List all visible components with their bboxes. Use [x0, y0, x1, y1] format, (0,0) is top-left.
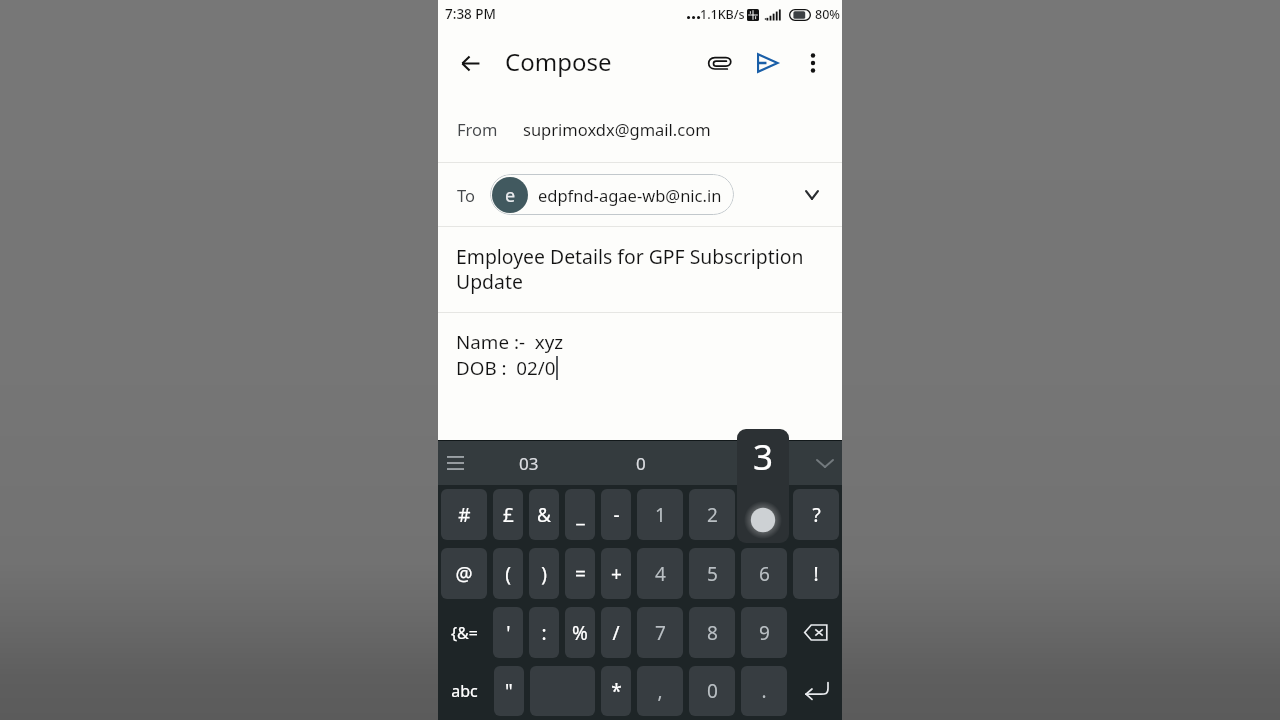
staticText: :: [541, 620, 547, 646]
staticText: 6: [759, 561, 770, 587]
staticText: /: [612, 620, 620, 646]
staticText: 2: [707, 502, 718, 528]
staticText: =: [575, 561, 586, 587]
staticText: 3: [759, 502, 770, 528]
staticText: e: [505, 183, 516, 208]
staticText: 7: [655, 620, 666, 646]
button[interactable]: Keyboard menu: [438, 441, 473, 485]
button[interactable]: Name :- xyz: [438, 313, 842, 440]
staticText: %: [572, 620, 588, 646]
button[interactable]: ': [493, 607, 523, 658]
button[interactable]: 5: [689, 548, 735, 599]
staticText: 5: [707, 561, 718, 587]
staticText: {&=: [451, 622, 478, 644]
button[interactable]: Expand recipients: [790, 173, 834, 217]
button[interactable]: ": [494, 666, 524, 716]
staticText: abc: [451, 680, 478, 702]
button[interactable]: Back: [447, 40, 493, 86]
staticText: .: [761, 678, 767, 704]
staticText: @: [455, 561, 473, 587]
button[interactable]: More options: [791, 41, 835, 85]
staticText: DOB : 02/0: [456, 355, 556, 381]
button[interactable]: ,: [637, 666, 683, 716]
staticText: &: [537, 502, 551, 528]
button[interactable]: !: [793, 548, 839, 599]
staticText: 0: [636, 452, 646, 475]
button[interactable]: e: [490, 174, 734, 215]
staticText: -: [613, 502, 620, 528]
staticText: ): [541, 561, 547, 587]
button[interactable]: :: [529, 607, 559, 658]
staticText: suprimoxdx@gmail.com: [523, 118, 711, 140]
button[interactable]: 3: [741, 489, 787, 540]
staticText: 3: [753, 433, 774, 481]
staticText: 7:38 PM: [445, 5, 496, 23]
staticText: 8: [707, 620, 718, 646]
button[interactable]: {&=: [441, 607, 487, 658]
staticText: 80%: [815, 6, 840, 23]
button[interactable]: 8: [689, 607, 735, 658]
staticText: +: [611, 561, 622, 587]
staticText: £: [503, 502, 514, 528]
staticText: *: [611, 678, 622, 704]
button[interactable]: -: [601, 489, 631, 540]
button[interactable]: 0: [689, 666, 735, 716]
button[interactable]: #: [441, 489, 487, 540]
button[interactable]: 6: [741, 548, 787, 599]
button[interactable]: 9: [741, 607, 787, 658]
button[interactable]: Attach file: [695, 39, 743, 87]
button[interactable]: *: [601, 666, 631, 716]
button[interactable]: 2: [689, 489, 735, 540]
button[interactable]: (: [493, 548, 523, 599]
staticText: 4: [655, 561, 666, 587]
button[interactable]: From: [438, 96, 842, 162]
button[interactable]: &: [529, 489, 559, 540]
staticText: 1.1KB/s: [700, 6, 745, 23]
button[interactable]: [793, 666, 839, 716]
staticText: ': [506, 620, 511, 646]
staticText: Name :- xyz: [456, 329, 564, 355]
staticText: To: [457, 184, 476, 206]
button[interactable]: 4: [637, 548, 683, 599]
button[interactable]: Employee Details for GPF Subscription Up…: [438, 227, 842, 312]
staticText: ,: [657, 678, 663, 704]
staticText: !: [813, 561, 819, 587]
button[interactable]: _: [565, 489, 595, 540]
staticText: edpfnd-agae-wb@nic.in: [538, 184, 722, 206]
button[interactable]: 1: [637, 489, 683, 540]
staticText: 0: [707, 678, 718, 704]
button[interactable]: Hide keyboard: [807, 441, 842, 485]
button[interactable]: 7: [637, 607, 683, 658]
button[interactable]: @: [441, 548, 487, 599]
button[interactable]: ): [529, 548, 559, 599]
button[interactable]: /: [601, 607, 631, 658]
button[interactable]: ?: [793, 489, 839, 540]
staticText: ": [505, 678, 513, 704]
button[interactable]: Send: [743, 39, 791, 87]
staticText: 03: [519, 452, 539, 475]
staticText: (: [505, 561, 511, 587]
button[interactable]: abc: [441, 666, 488, 716]
button[interactable]: £: [493, 489, 523, 540]
button[interactable]: .: [741, 666, 787, 716]
staticText: 9: [759, 620, 770, 646]
button[interactable]: [793, 607, 839, 658]
staticText: 1: [655, 502, 666, 528]
staticText: Employee Details for GPF Subscription Up…: [456, 243, 818, 295]
staticText: From: [457, 118, 498, 140]
staticText: _: [576, 502, 585, 528]
button[interactable]: %: [565, 607, 595, 658]
staticText: ?: [812, 502, 821, 528]
staticText: Compose: [505, 45, 612, 78]
staticText: #: [458, 502, 471, 528]
button[interactable]: +: [601, 548, 631, 599]
button[interactable]: =: [565, 548, 595, 599]
